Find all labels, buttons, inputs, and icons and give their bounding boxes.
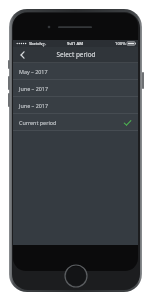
button[interactable]: Power — [142, 72, 144, 89]
staticText: 9:41 AM — [67, 41, 84, 47]
button[interactable]: June – 2017 — [13, 97, 138, 114]
button[interactable]: Mute switch — [8, 60, 10, 69]
button[interactable]: Volume up — [8, 76, 10, 90]
button[interactable]: June – 2017 — [13, 80, 138, 97]
staticText: Sketch — [29, 41, 43, 47]
staticText: May – 2017 — [19, 68, 48, 75]
staticText: Select period — [56, 50, 96, 59]
button[interactable]: Current period — [13, 114, 138, 131]
staticText: Current period — [19, 119, 57, 126]
button[interactable]: Home — [65, 265, 87, 287]
staticText: June – 2017 — [19, 102, 49, 109]
button[interactable]: Volume down — [8, 93, 10, 107]
staticText: June – 2017 — [19, 85, 49, 92]
button[interactable]: May – 2017 — [13, 63, 138, 80]
staticText: 100% — [115, 41, 126, 47]
button[interactable]: Back — [13, 47, 31, 62]
